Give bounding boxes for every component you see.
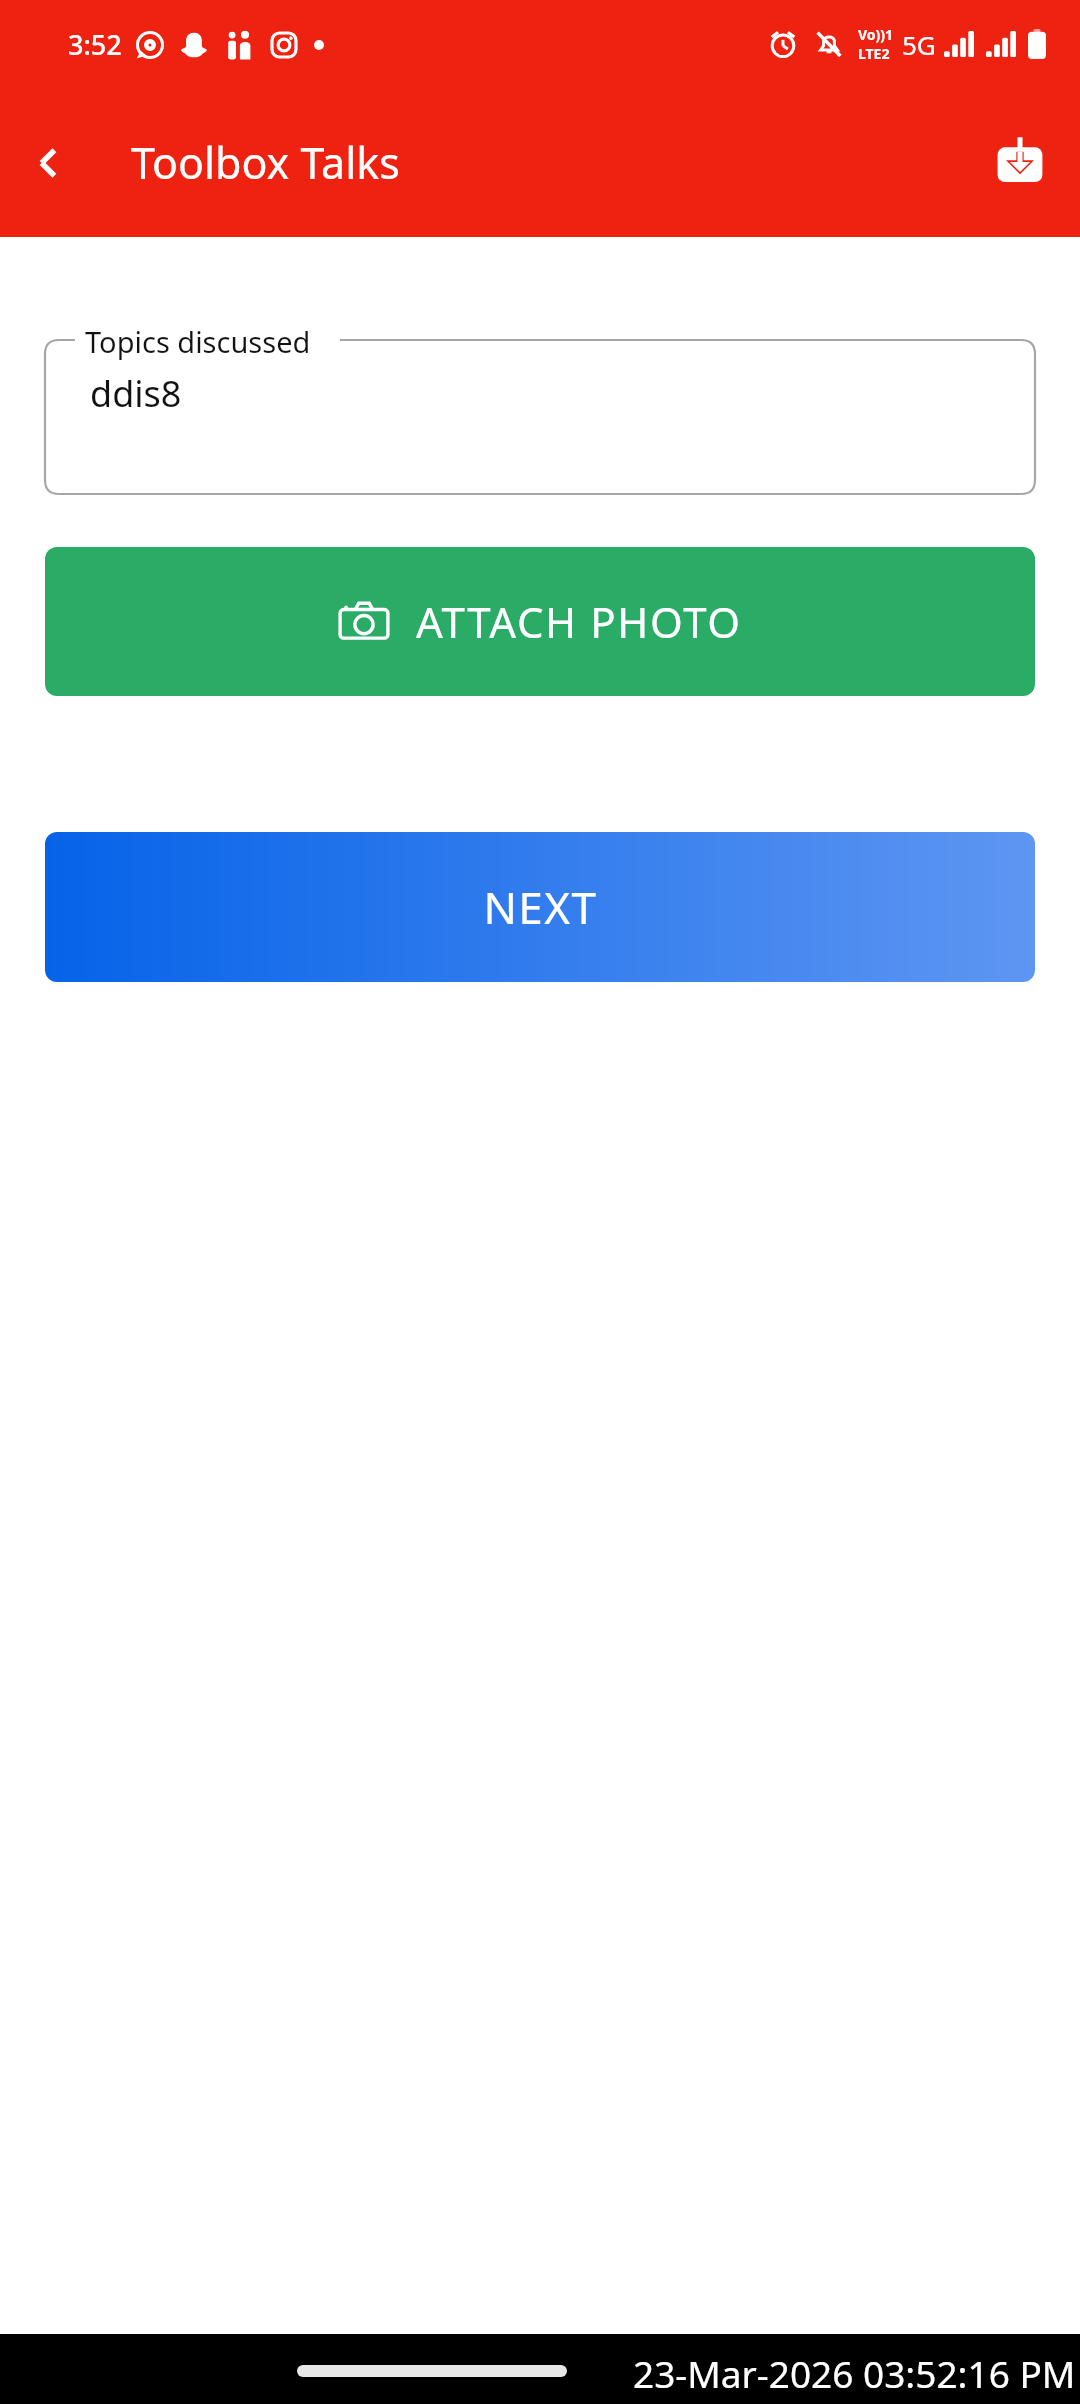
button[interactable]: Back: [10, 125, 86, 201]
staticText: Vo))1: [858, 25, 894, 44]
staticText: ATTACH PHOTO: [416, 593, 742, 650]
staticText: LTE2: [858, 44, 890, 63]
staticText: 3:52: [68, 26, 122, 63]
staticText: Toolbox Talks: [131, 133, 400, 192]
staticText: 5G: [902, 27, 936, 62]
staticText: NEXT: [483, 877, 598, 937]
button[interactable]: ATTACH PHOTO: [45, 547, 1035, 696]
staticText: 23-Mar-2026 03:52:16 PM: [633, 2348, 1076, 2398]
staticText: ddis8: [90, 369, 182, 418]
staticText: Topics discussed: [85, 322, 311, 361]
button[interactable]: NEXT: [45, 832, 1035, 982]
button[interactable]: Download: [978, 121, 1062, 205]
